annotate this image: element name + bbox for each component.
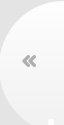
button[interactable]: Back <box>0 0 64 125</box>
